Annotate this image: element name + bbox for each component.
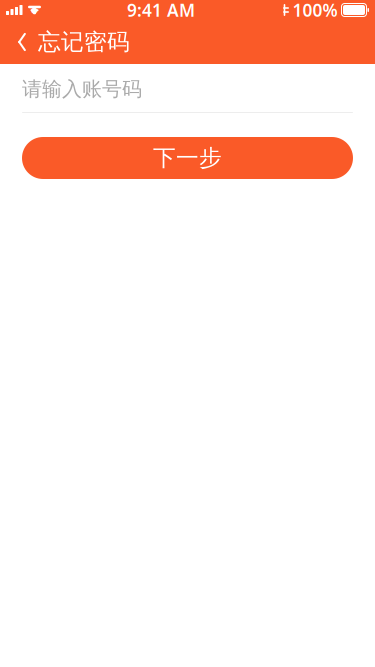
- staticText: ⬡: [278, 2, 290, 17]
- button[interactable]: 返回 忘记密码: [0, 20, 140, 64]
- staticText: ●: [31, 5, 38, 15]
- staticText: 下一步: [153, 144, 222, 172]
- button[interactable]: 下一步: [22, 137, 353, 179]
- staticText: 忘记密码: [38, 28, 130, 56]
- staticText: 9:41 AM: [127, 0, 195, 21]
- staticText: 100%: [292, 0, 337, 21]
- staticText: 请输入账号码: [22, 77, 142, 101]
